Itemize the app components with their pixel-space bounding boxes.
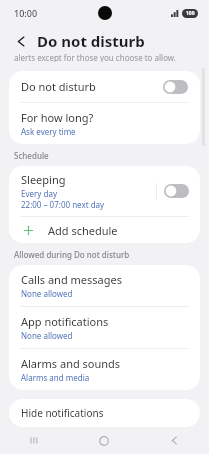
button[interactable]: Recents xyxy=(0,427,69,454)
staticText: Add schedule xyxy=(48,223,118,238)
button[interactable]: Back xyxy=(11,31,31,51)
staticText: Schedule xyxy=(14,150,49,161)
staticText: Every day xyxy=(21,188,57,199)
staticText: Alarms and media xyxy=(21,372,90,383)
button[interactable]: Hide notifications xyxy=(9,399,200,427)
staticText: alerts except for those you choose to al… xyxy=(14,52,176,62)
staticText: Sleeping xyxy=(21,172,66,187)
staticText: Ask every time xyxy=(21,126,76,137)
button[interactable]: Alarms and sounds xyxy=(9,349,200,390)
staticText: 100 xyxy=(186,10,195,17)
staticText: Alarms and sounds xyxy=(21,356,121,371)
button[interactable]: Do not disturb xyxy=(9,71,200,102)
staticText: Do not disturb xyxy=(37,31,145,51)
button[interactable]: Toggle Sleeping schedule xyxy=(164,184,189,198)
staticText: 10:00 xyxy=(14,7,38,19)
button[interactable]: Back xyxy=(139,427,209,454)
button[interactable]: Add schedule xyxy=(9,217,200,243)
staticText: Allowed during Do not disturb xyxy=(14,249,130,260)
button[interactable]: Calls and messages xyxy=(9,265,200,306)
staticText: None allowed xyxy=(21,330,73,341)
button[interactable]: App notifications xyxy=(9,307,200,348)
button[interactable]: Home xyxy=(69,427,139,454)
staticText: App notifications xyxy=(21,314,109,329)
staticText: For how long? xyxy=(21,110,94,125)
staticText: Hide notifications xyxy=(21,406,104,420)
staticText: Calls and messages xyxy=(21,272,122,287)
button[interactable]: For how long? xyxy=(9,103,200,144)
staticText: 22:00 – 07:00 next day xyxy=(21,199,105,210)
button[interactable]: Sleeping xyxy=(9,166,200,216)
staticText: None allowed xyxy=(21,288,73,299)
staticText: Do not disturb xyxy=(21,79,163,94)
